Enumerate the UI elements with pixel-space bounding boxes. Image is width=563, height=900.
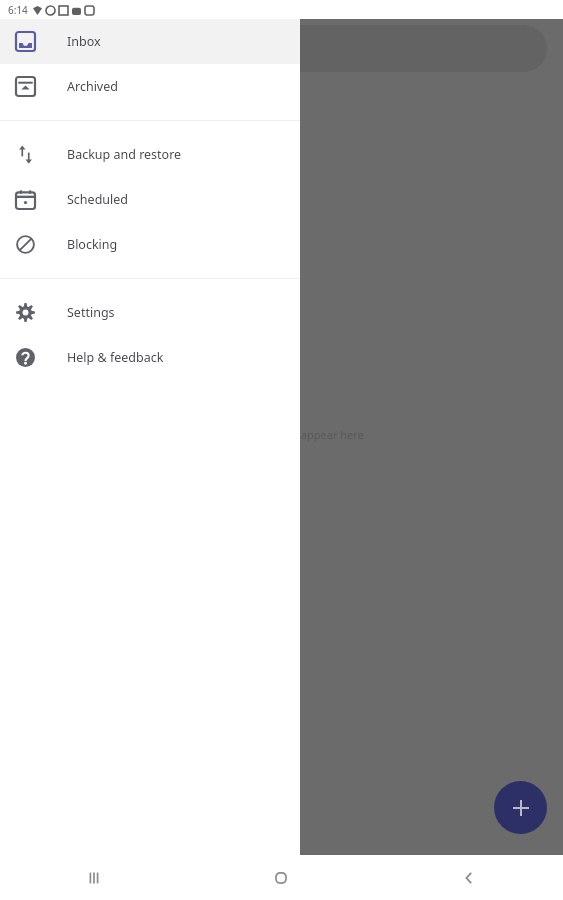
button[interactable]: Inbox	[0, 19, 300, 64]
button[interactable]: Archived	[0, 64, 300, 109]
button[interactable]: Search messages	[10, 25, 547, 72]
staticText: Help & feedback	[67, 349, 164, 366]
staticText: 6:14	[8, 3, 28, 17]
staticText: Settings	[67, 304, 115, 321]
staticText: Your messages will appear here	[200, 427, 364, 442]
button[interactable]: Back	[375, 855, 563, 900]
staticText: Backup and restore	[67, 146, 182, 163]
staticText: Scheduled	[67, 191, 129, 208]
button[interactable]: Home	[187, 855, 375, 900]
staticText: Archived	[67, 78, 118, 95]
staticText: Inbox	[67, 33, 101, 50]
button[interactable]: New conversation	[494, 781, 547, 834]
button[interactable]: Blocking	[0, 222, 300, 267]
button[interactable]: Settings	[0, 290, 300, 335]
button[interactable]: Scheduled	[0, 177, 300, 222]
button[interactable]: Help & feedback	[0, 335, 300, 380]
staticText: Blocking	[67, 236, 118, 253]
button[interactable]: Backup and restore	[0, 132, 300, 177]
button[interactable]: Recents	[0, 855, 187, 900]
